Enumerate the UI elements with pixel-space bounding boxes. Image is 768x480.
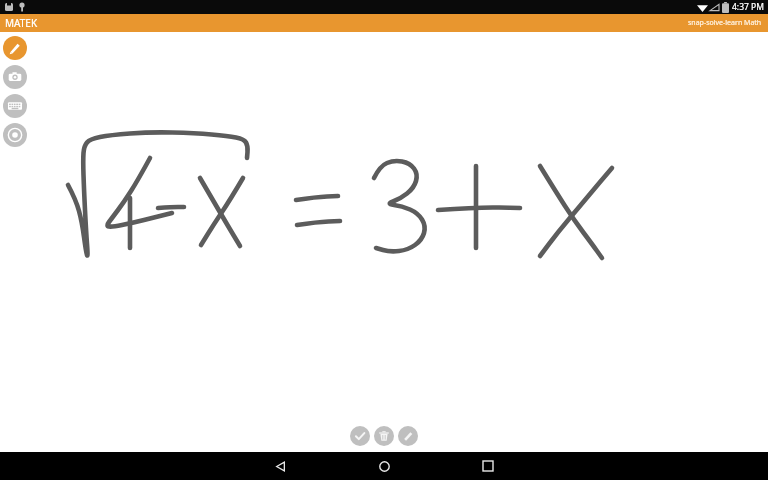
staticText: 4:37 PM	[732, 1, 764, 13]
button[interactable]: Camera	[3, 65, 27, 89]
button[interactable]: Erase	[398, 426, 418, 446]
button[interactable]: Delete	[374, 426, 394, 446]
button[interactable]: Target	[3, 123, 27, 147]
button[interactable]: Home	[369, 452, 399, 480]
staticText: MATEK	[5, 16, 38, 30]
button[interactable]: Recents	[473, 452, 503, 480]
staticText: snap-solve-learn Math	[688, 18, 762, 28]
button[interactable]: Draw	[3, 36, 27, 60]
button[interactable]: Keyboard	[3, 94, 27, 118]
button[interactable]: Back	[265, 452, 295, 480]
button[interactable]: Done	[350, 426, 370, 446]
